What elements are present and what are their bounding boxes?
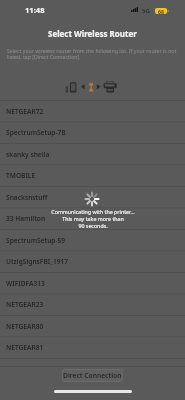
staticText: Direct Connection: [63, 371, 122, 380]
button[interactable]: Snacksnstuff: [0, 187, 185, 208]
button[interactable]: NETGEAR72: [0, 101, 185, 122]
staticText: TMOBILE: [6, 171, 36, 180]
staticText: UtzigSignsFBI_1917: [6, 257, 69, 266]
staticText: skanky sheila: [6, 150, 50, 159]
button[interactable]: skanky sheila: [0, 144, 185, 165]
button[interactable]: NETGEAR80: [0, 316, 185, 337]
staticText: SpectrumSetup-7B: [6, 128, 66, 137]
button[interactable]: SpectrumSetup-7B: [0, 122, 185, 143]
staticText: WIFIDFA313: [6, 279, 45, 288]
button[interactable]: Direct Connection: [62, 369, 123, 382]
staticText: 33 Hamilton: [6, 214, 46, 223]
staticText: Communicating with the printer... This m…: [51, 208, 135, 229]
staticText: NETGEAR72: [6, 107, 44, 116]
button[interactable]: TMOBILE: [0, 165, 185, 186]
staticText: 68: [158, 8, 164, 14]
button[interactable]: NETGEAR23: [0, 294, 185, 315]
staticText: Select your wireless router from the fol…: [7, 47, 178, 60]
staticText: Snacksnstuff: [6, 193, 48, 202]
staticText: 11:48: [25, 5, 45, 15]
staticText: SpectrumSetup-59: [6, 236, 66, 245]
staticText: Select Wireless Router: [48, 28, 137, 39]
staticText: NETGEAR80: [6, 322, 44, 331]
button[interactable]: NETGEAR81: [0, 337, 185, 358]
button[interactable]: 33 Hamilton: [0, 208, 185, 229]
staticText: NETGEAR81: [6, 343, 44, 352]
button[interactable]: SpectrumSetup-59: [0, 230, 185, 251]
button[interactable]: UtzigSignsFBI_1917: [0, 251, 185, 272]
button[interactable]: WIFIDFA313: [0, 273, 185, 294]
staticText: 5G: [142, 7, 150, 15]
staticText: NETGEAR23: [6, 300, 44, 309]
